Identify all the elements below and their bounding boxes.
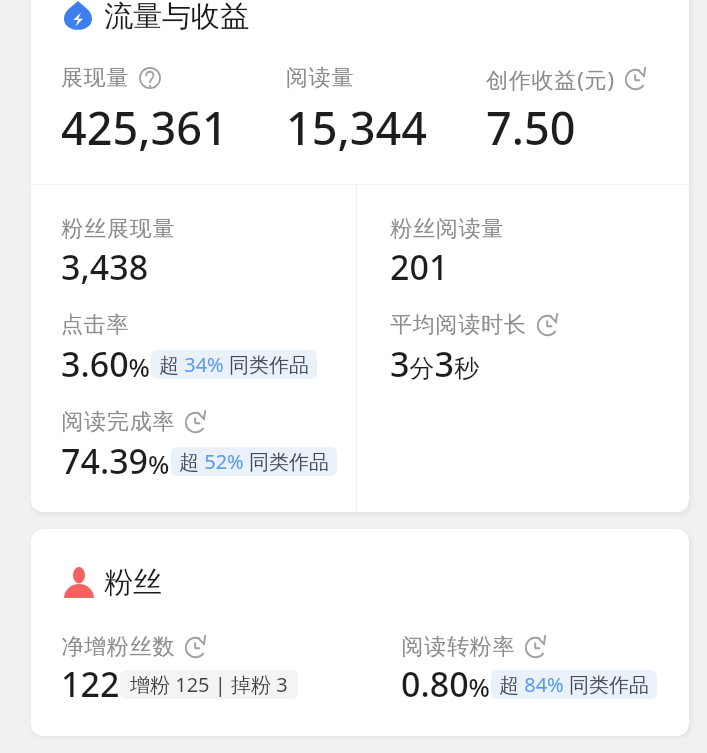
button[interactable]: 流量与收益 [64,0,249,35]
button[interactable]: 粉丝 [64,564,162,601]
button[interactable]: 超 34% 同类作品 [151,350,317,379]
staticText: 425,361 [61,97,228,158]
staticText: 201 [390,244,449,290]
staticText: 0.80% [401,661,490,707]
staticText: 7.50 [486,97,576,158]
staticText: 3,438 [61,244,149,290]
button[interactable]: 数据更新说明 [524,636,547,659]
button[interactable]: 数据更新说明 [184,411,207,434]
staticText: 15,344 [286,97,427,158]
staticText: 阅读转粉率 [401,633,515,661]
staticText: 超 84% 同类作品 [499,671,649,698]
staticText: 122 [61,661,120,707]
staticText: 粉丝展现量 [61,215,175,243]
staticText: 点击率 [61,311,130,339]
staticText: 超 34% 同类作品 [159,351,309,378]
staticText: 74.39% [61,438,170,484]
staticText: 超 52% 同类作品 [179,448,329,475]
staticText: 展现量 [61,64,130,92]
button[interactable]: 数据更新说明 [184,636,207,659]
staticText: 增粉 125 | 掉粉 3 [130,671,288,698]
button[interactable]: 数据更新说明 [624,68,647,91]
staticText: 阅读完成率 [61,408,175,436]
button[interactable]: 增粉 125 | 掉粉 3 [120,670,298,699]
button[interactable]: 展现量说明 [139,67,161,89]
button[interactable]: 数据更新说明 [536,314,559,337]
staticText: 流量与收益 [104,0,249,35]
staticText: 3分3秒 [390,341,479,387]
button[interactable]: 超 52% 同类作品 [171,447,337,476]
staticText: 阅读量 [286,64,355,92]
staticText: 创作收益(元) [486,64,615,94]
staticText: 粉丝 [104,564,162,601]
staticText: 粉丝阅读量 [390,215,504,243]
staticText: 平均阅读时长 [390,311,527,339]
staticText: 3.60% [61,341,150,387]
staticText: 净增粉丝数 [61,633,175,661]
button[interactable]: 超 84% 同类作品 [491,670,657,699]
